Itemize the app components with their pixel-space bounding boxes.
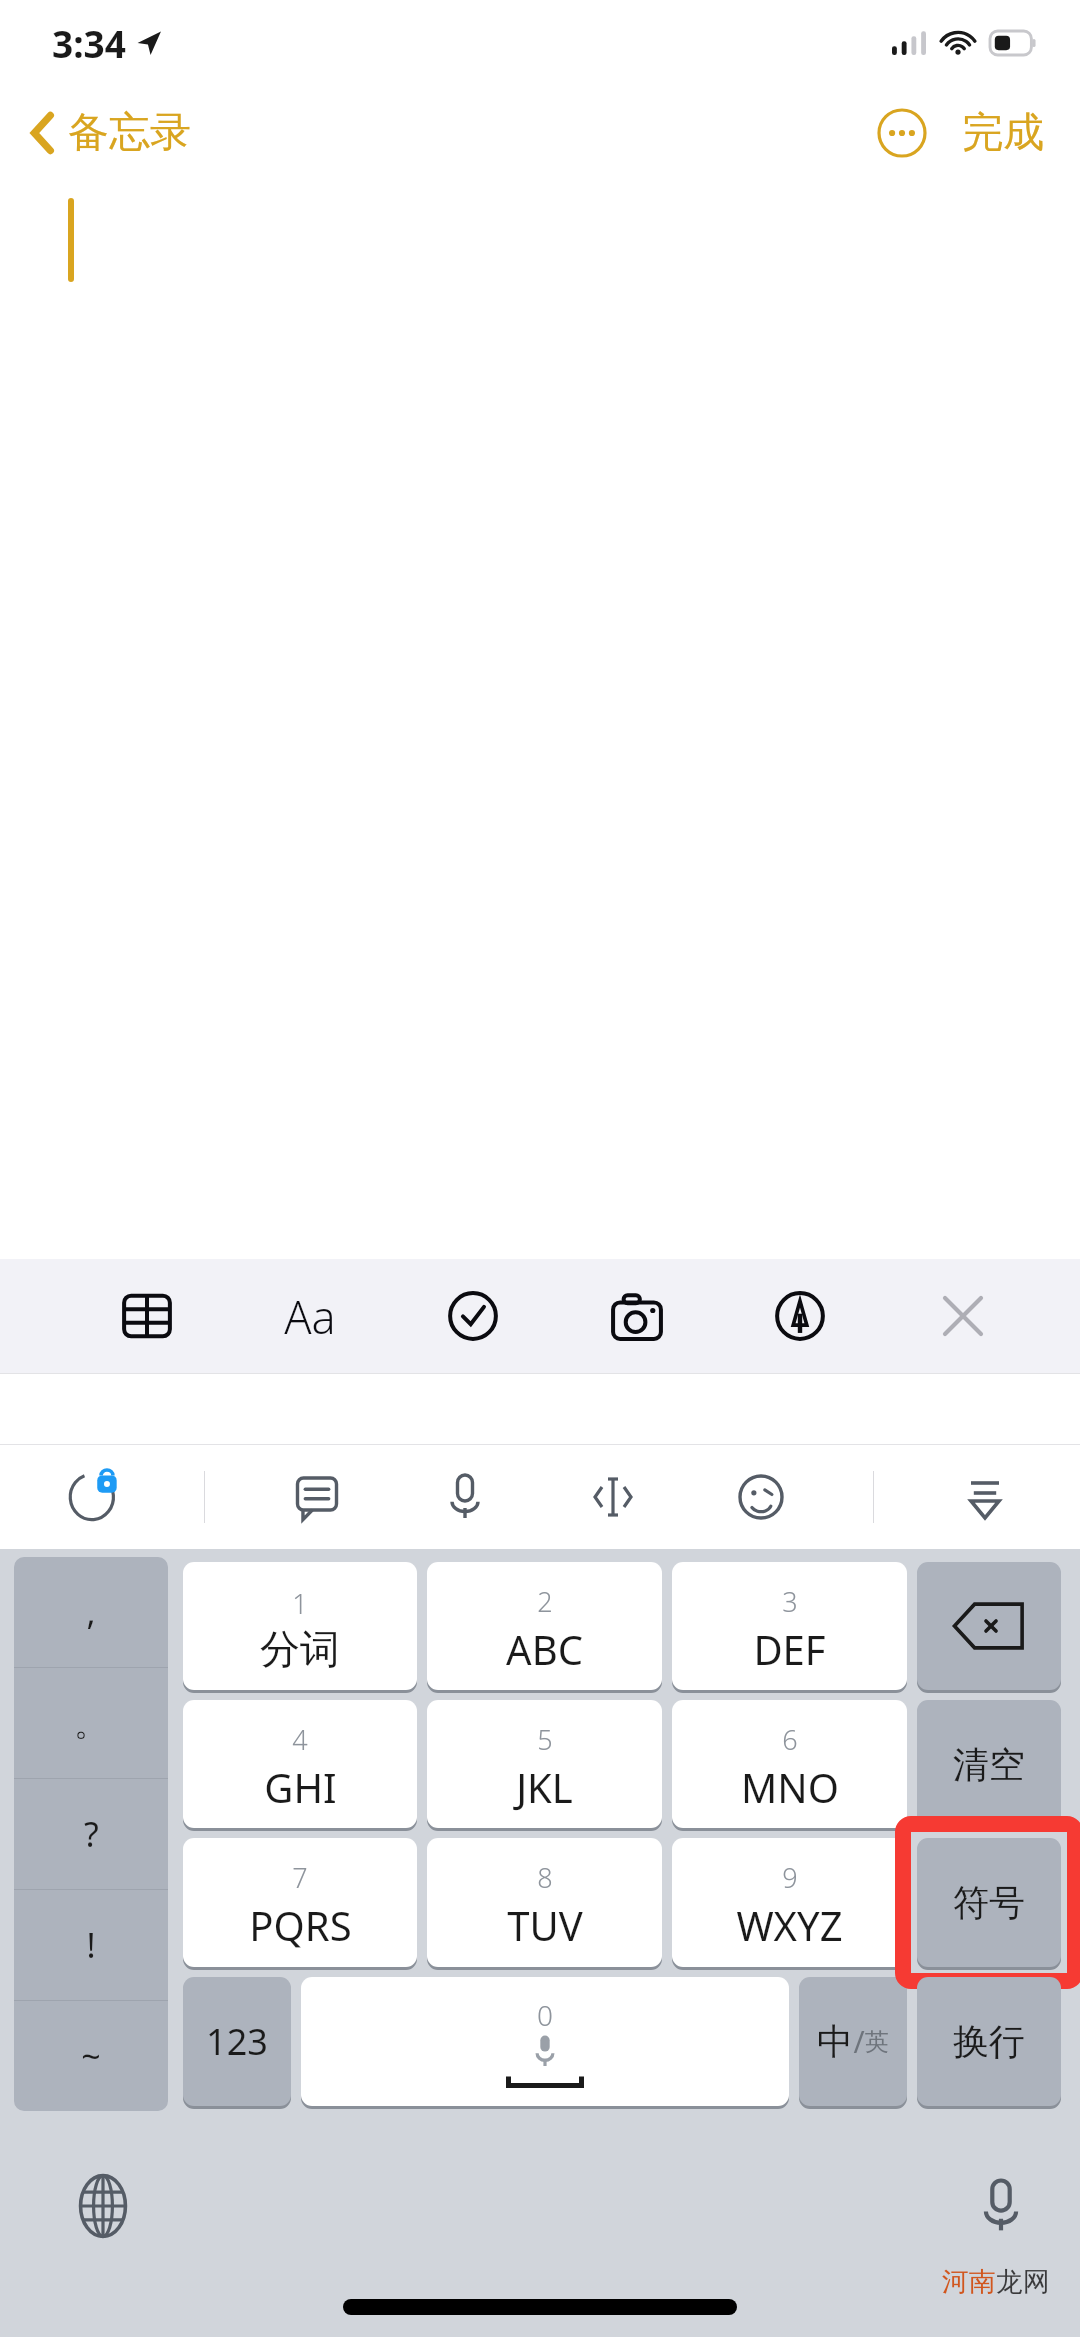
staticText: ABC bbox=[506, 1622, 583, 1676]
button[interactable]: Text format bbox=[273, 1279, 347, 1353]
staticText: 1 bbox=[292, 1585, 308, 1622]
staticText: 英 bbox=[865, 2027, 889, 2057]
button[interactable]: 7 bbox=[183, 1838, 417, 1967]
staticText: PQRS bbox=[249, 1898, 352, 1952]
staticText: WXYZ bbox=[736, 1898, 843, 1952]
button[interactable]: Close bbox=[926, 1279, 1000, 1353]
button[interactable]: 1 bbox=[183, 1562, 417, 1690]
button[interactable]: Input method bbox=[58, 1461, 130, 1533]
button[interactable]: 4 bbox=[183, 1700, 417, 1828]
staticText: 9 bbox=[782, 1859, 798, 1896]
button[interactable]: Checklist bbox=[436, 1279, 510, 1353]
button[interactable]: 5 bbox=[427, 1700, 662, 1828]
staticText: ! bbox=[86, 1922, 96, 1968]
button[interactable]: Emoji bbox=[724, 1460, 798, 1534]
staticText: GHI bbox=[264, 1760, 337, 1814]
button[interactable]: 。 bbox=[14, 1668, 168, 1778]
button[interactable]: 3 bbox=[672, 1562, 907, 1690]
staticText: 3 bbox=[782, 1583, 798, 1620]
staticText: 中 bbox=[817, 2019, 853, 2064]
button[interactable]: 2 bbox=[427, 1562, 662, 1690]
staticText: 0 bbox=[537, 1996, 553, 2034]
button[interactable]: 符号 bbox=[917, 1838, 1061, 1967]
staticText: 。 bbox=[74, 1702, 108, 1745]
button[interactable]: Hide keyboard bbox=[948, 1460, 1022, 1534]
staticText: ~ bbox=[81, 2033, 101, 2079]
staticText: JKL bbox=[516, 1760, 573, 1814]
button[interactable]: Phrases bbox=[280, 1460, 354, 1534]
button[interactable]: Switch language bbox=[66, 2169, 140, 2243]
staticText: 符号 bbox=[953, 1880, 1025, 1925]
button[interactable]: ? bbox=[14, 1779, 168, 1889]
button[interactable]: 8 bbox=[427, 1838, 662, 1967]
staticText: MNO bbox=[741, 1760, 839, 1814]
button[interactable]: ~ bbox=[14, 2001, 168, 2111]
button[interactable]: More options bbox=[874, 105, 930, 161]
staticText: Aa bbox=[284, 1286, 336, 1347]
staticText: 3:34 bbox=[52, 18, 126, 68]
staticText: / bbox=[853, 2021, 865, 2062]
staticText: TUV bbox=[507, 1898, 583, 1952]
staticText: 8 bbox=[537, 1859, 553, 1896]
staticText: 河南 bbox=[942, 2265, 996, 2299]
button[interactable]: 123 bbox=[183, 1977, 291, 2106]
staticText: 分词 bbox=[260, 1624, 340, 1674]
button[interactable]: Cursor control bbox=[576, 1460, 650, 1534]
staticText: 清空 bbox=[953, 1742, 1025, 1787]
button[interactable]: 换行 bbox=[917, 1977, 1061, 2106]
staticText: 换行 bbox=[953, 2019, 1025, 2064]
staticText: 7 bbox=[292, 1859, 308, 1896]
staticText: , bbox=[86, 1589, 96, 1635]
button[interactable]: 9 bbox=[672, 1838, 907, 1967]
staticText: 备忘录 bbox=[68, 107, 191, 159]
button[interactable]: Voice input bbox=[964, 2169, 1038, 2243]
staticText: 2 bbox=[537, 1583, 553, 1620]
staticText: DEF bbox=[753, 1622, 826, 1676]
button[interactable]: Backspace bbox=[917, 1562, 1061, 1690]
staticText: 5 bbox=[537, 1721, 553, 1758]
staticText: 龙网 bbox=[996, 2265, 1050, 2299]
button[interactable]: 备忘录 bbox=[0, 99, 211, 167]
button[interactable]: Table bbox=[110, 1279, 184, 1353]
button[interactable]: ! bbox=[14, 1890, 168, 2000]
staticText: ? bbox=[84, 1811, 99, 1857]
button[interactable]: Space bbox=[301, 1977, 789, 2106]
staticText: 6 bbox=[782, 1721, 798, 1758]
button[interactable]: , bbox=[14, 1557, 168, 1667]
button[interactable]: 6 bbox=[672, 1700, 907, 1828]
button[interactable]: 完成 bbox=[952, 99, 1054, 167]
button[interactable]: 中 bbox=[799, 1977, 907, 2106]
button[interactable]: Voice input bbox=[428, 1460, 502, 1534]
button[interactable]: Camera bbox=[600, 1279, 674, 1353]
button[interactable]: 清空 bbox=[917, 1700, 1061, 1828]
staticText: 123 bbox=[206, 2017, 268, 2066]
staticText: 4 bbox=[292, 1721, 308, 1758]
button[interactable]: Markup bbox=[763, 1279, 837, 1353]
staticText: 完成 bbox=[962, 107, 1044, 159]
